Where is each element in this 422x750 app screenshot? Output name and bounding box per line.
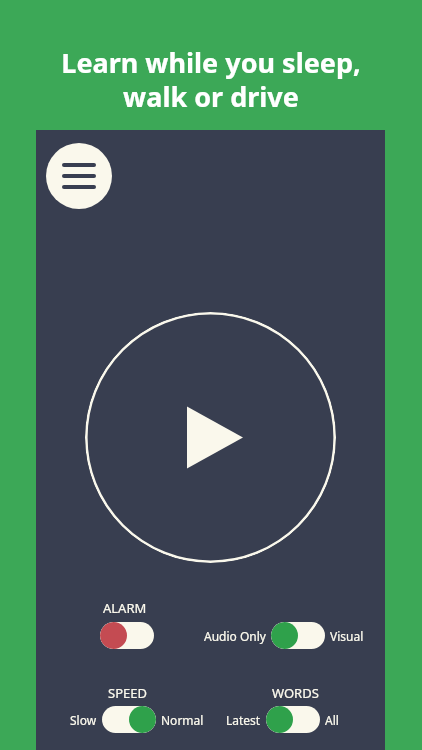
- staticText: SPEED: [108, 684, 147, 702]
- staticText: Slow: [70, 712, 97, 728]
- button[interactable]: Audio or visual: [271, 622, 325, 649]
- staticText: WORDS: [272, 684, 319, 702]
- staticText: ALARM: [103, 599, 147, 617]
- staticText: Learn while you sleep, walk or drive: [61, 44, 361, 115]
- button[interactable]: Menu: [46, 143, 112, 209]
- staticText: Visual: [330, 628, 364, 644]
- button[interactable]: Speed toggle: [102, 706, 156, 733]
- staticText: All: [325, 712, 339, 728]
- staticText: Latest: [226, 712, 261, 728]
- staticText: Normal: [161, 712, 204, 728]
- staticText: Audio Only: [204, 628, 266, 644]
- button[interactable]: Words toggle: [266, 706, 320, 733]
- button[interactable]: Alarm toggle: [100, 622, 154, 649]
- button[interactable]: Play: [85, 312, 336, 563]
